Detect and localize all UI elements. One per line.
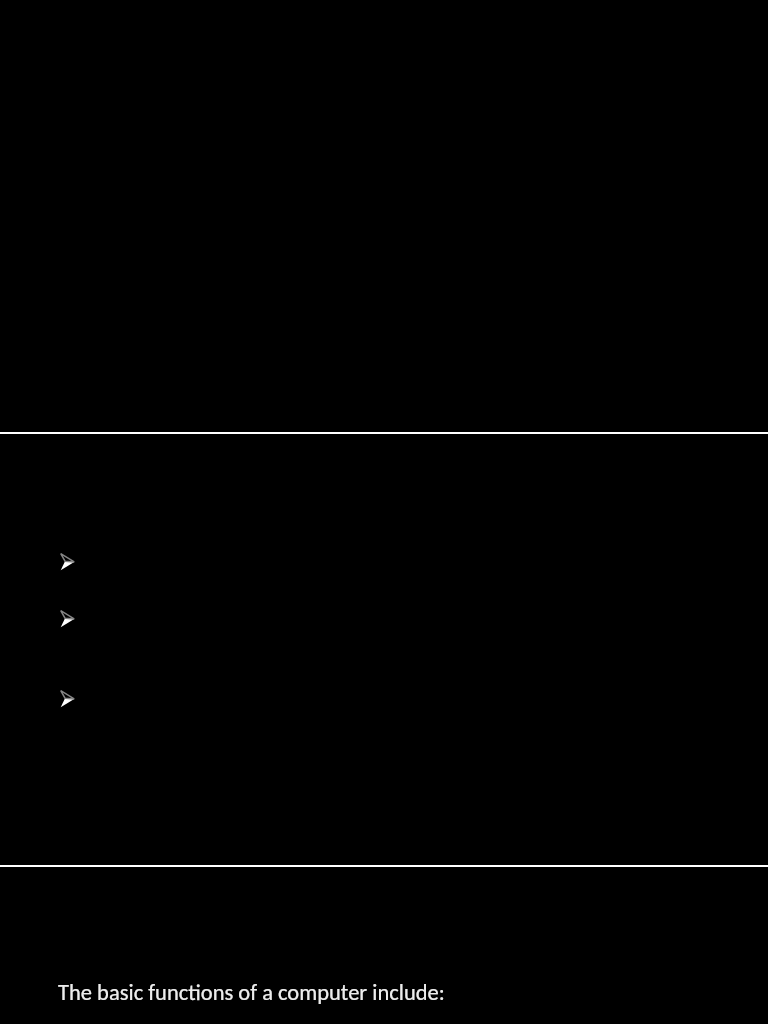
button[interactable]: Slide, The basic functions of a computer…: [0, 867, 768, 1024]
button[interactable]: Slide, bulleted list: [0, 434, 768, 865]
